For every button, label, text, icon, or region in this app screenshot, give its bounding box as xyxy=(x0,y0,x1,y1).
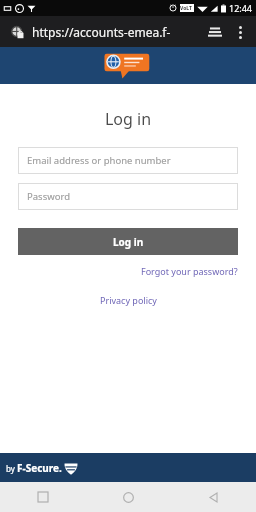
staticText: Forgot your password? xyxy=(141,265,238,277)
staticText: Privacy policy xyxy=(100,294,157,306)
button[interactable]: Password xyxy=(18,183,238,210)
button[interactable]: More options xyxy=(229,21,251,43)
button[interactable]: Site information xyxy=(9,24,25,40)
button[interactable]: Tabs xyxy=(204,21,226,43)
staticText: 12:44 xyxy=(229,2,253,14)
button[interactable]: Privacy policy xyxy=(100,294,157,306)
staticText: Log in xyxy=(113,235,144,249)
staticText: VoLTE xyxy=(180,5,194,12)
button[interactable]: Home xyxy=(86,482,171,512)
staticText: Email address or phone number xyxy=(27,154,171,167)
button[interactable]: Forgot your password? xyxy=(141,265,238,277)
button[interactable]: Log in xyxy=(18,228,238,255)
button[interactable]: Back xyxy=(171,482,256,512)
staticText: by xyxy=(6,463,17,474)
staticText: Log in xyxy=(0,108,256,130)
staticText: Password xyxy=(27,190,70,203)
button[interactable]: Email address or phone number xyxy=(18,147,238,174)
button[interactable]: Recent apps xyxy=(0,482,86,512)
staticText: F-Secure. xyxy=(17,461,62,475)
staticText: https://accounts-emea.f-secure xyxy=(32,24,204,40)
